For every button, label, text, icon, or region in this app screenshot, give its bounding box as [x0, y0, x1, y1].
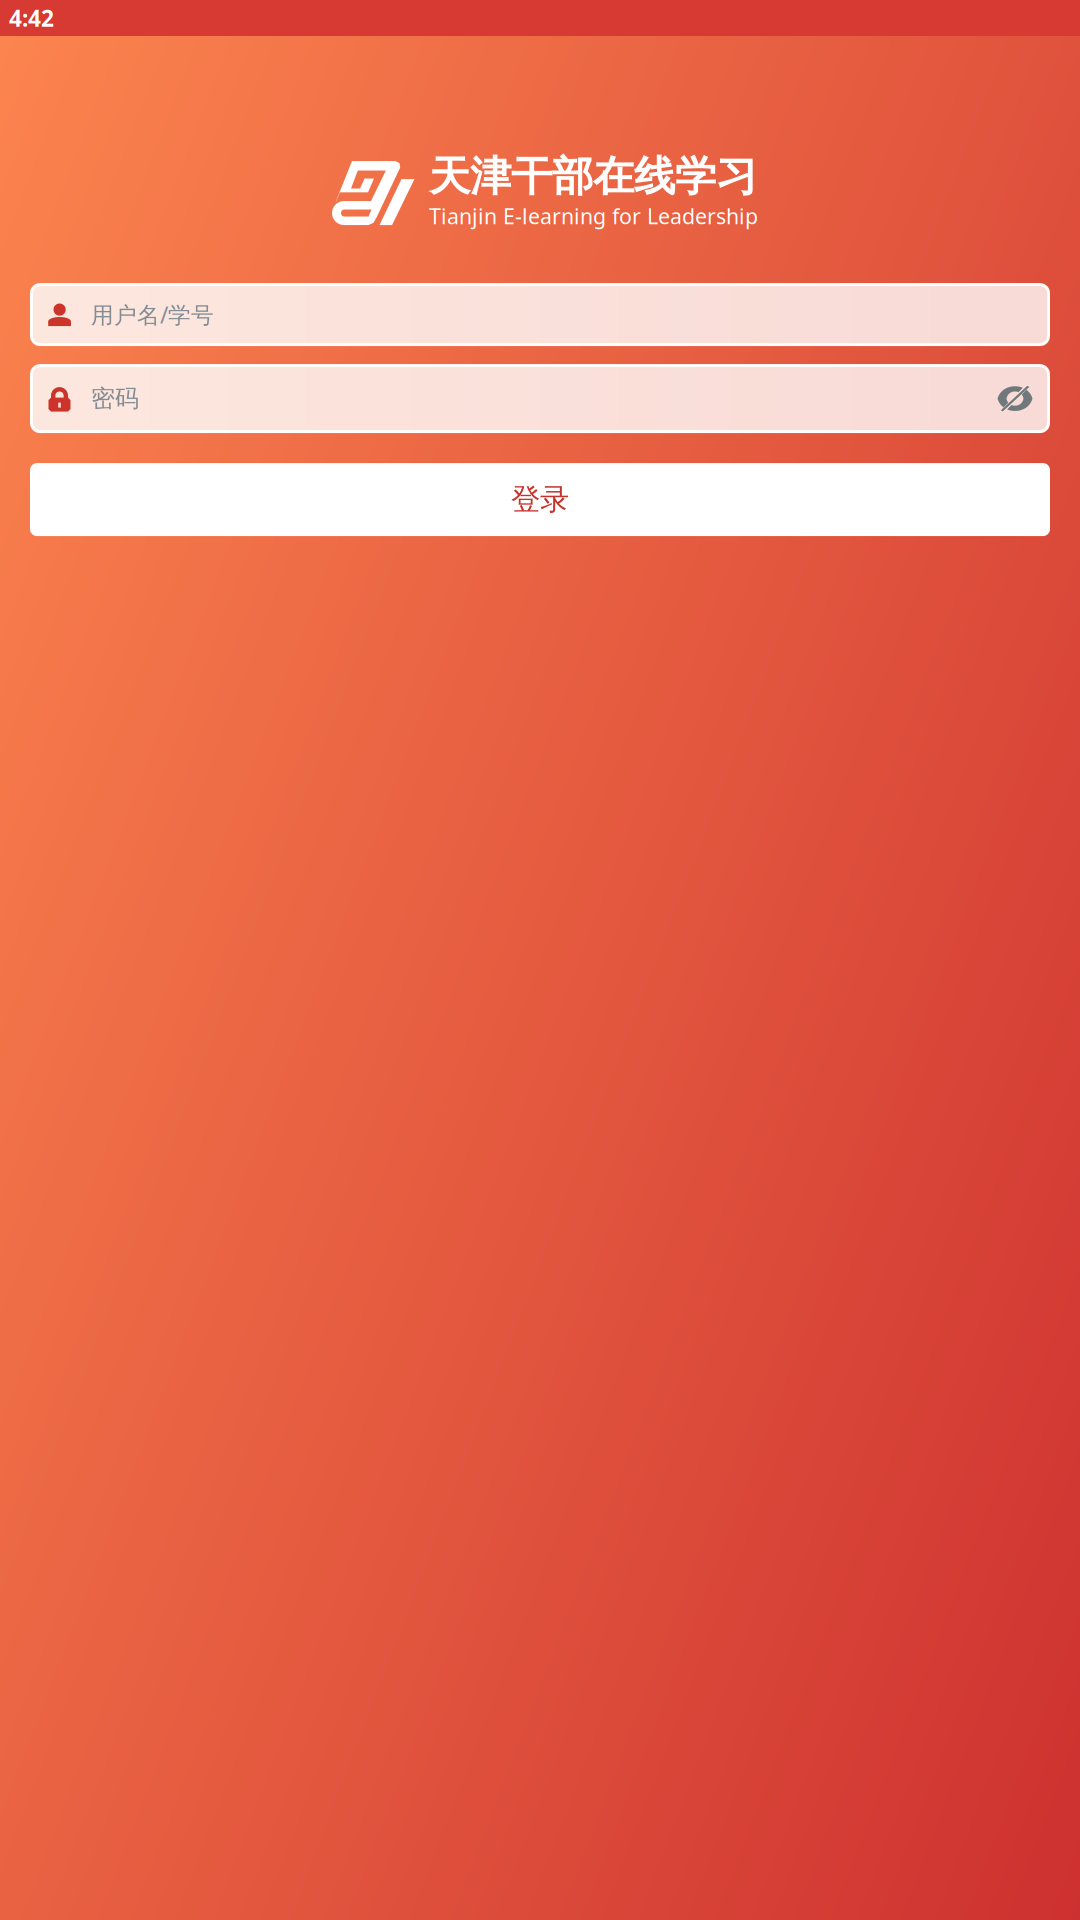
staticText: 密码: [91, 384, 139, 413]
staticText: 用户名/学号: [91, 299, 214, 330]
staticText: Tianjin E-learning for Leadership: [429, 202, 758, 230]
button[interactable]: Show password: [992, 376, 1038, 422]
staticText: 登录: [511, 482, 569, 518]
staticText: 天津干部在线学习: [429, 151, 757, 202]
button[interactable]: 登录: [0, 463, 1080, 536]
staticText: 4:42: [9, 3, 54, 33]
